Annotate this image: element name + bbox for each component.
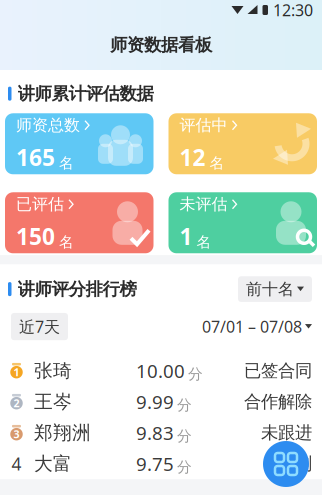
- staticText: 10.00: [136, 358, 185, 383]
- button[interactable]: 已评估: [5, 192, 153, 253]
- button[interactable]: 07/01 – 07/08: [202, 316, 312, 337]
- staticText: 名: [59, 154, 74, 172]
- button[interactable]: 评估中: [168, 113, 317, 174]
- staticText: 已签合同: [244, 360, 312, 381]
- staticText: 讲师评分排行榜: [17, 278, 136, 300]
- button[interactable]: More options: [263, 441, 309, 487]
- button[interactable]: 前十名: [238, 276, 312, 302]
- staticText: 郑翔洲: [34, 421, 91, 444]
- staticText: 07/01 – 07/08: [202, 316, 302, 337]
- staticText: 张琦: [34, 359, 72, 382]
- staticText: 12:30: [273, 0, 313, 21]
- staticText: 近7天: [19, 316, 60, 337]
- button[interactable]: 1: [0, 355, 322, 386]
- staticText: 1: [13, 365, 19, 379]
- staticText: 合作解除: [244, 391, 312, 412]
- staticText: 165: [16, 142, 55, 172]
- staticText: 1: [179, 221, 192, 251]
- staticText: 前十名: [246, 279, 294, 299]
- staticText: 讲师累计评估数据: [17, 83, 153, 104]
- staticText: 未跟进: [261, 422, 312, 443]
- button[interactable]: 近7天: [11, 313, 68, 340]
- button[interactable]: 4: [0, 448, 322, 479]
- button[interactable]: 3: [0, 417, 322, 448]
- staticText: 测: [295, 453, 312, 474]
- staticText: 2: [13, 396, 19, 410]
- button[interactable]: 师资总数: [5, 113, 153, 174]
- staticText: 4: [11, 452, 21, 475]
- staticText: 9.99: [136, 389, 174, 414]
- staticText: 9.83: [136, 420, 174, 445]
- staticText: 分: [177, 458, 192, 476]
- staticText: 已评估: [16, 194, 64, 214]
- staticText: 3: [13, 427, 19, 441]
- staticText: 名: [209, 154, 224, 172]
- staticText: 150: [16, 221, 55, 251]
- staticText: 师资总数: [16, 115, 80, 135]
- staticText: 9.75: [136, 451, 174, 476]
- staticText: 大富: [34, 452, 72, 475]
- staticText: 分: [177, 427, 192, 445]
- staticText: 评估中: [179, 115, 227, 135]
- staticText: 12: [179, 142, 205, 172]
- staticText: 分: [177, 396, 192, 414]
- button[interactable]: 2: [0, 386, 322, 417]
- staticText: 分: [188, 365, 203, 383]
- staticText: 未评估: [179, 194, 227, 214]
- staticText: 名: [196, 233, 211, 251]
- staticText: 王岑: [34, 390, 72, 413]
- staticText: 师资数据看板: [110, 34, 212, 56]
- button[interactable]: 未评估: [168, 192, 317, 253]
- staticText: 名: [59, 233, 74, 251]
